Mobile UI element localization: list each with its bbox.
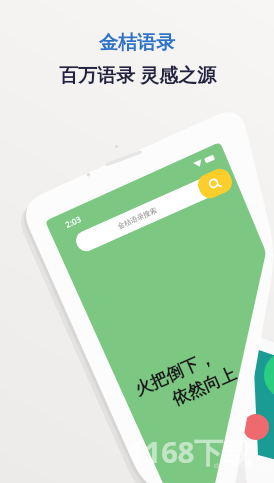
staticText: 金桔语录搜索 xyxy=(116,205,158,231)
staticText: 百万语录 灵感之源 xyxy=(59,62,216,88)
staticText: down.1168.com xyxy=(214,461,267,471)
staticText: 1168下载 xyxy=(128,432,253,472)
staticText: 火把倒下， xyxy=(131,347,218,400)
button[interactable]: Search xyxy=(194,165,236,202)
staticText: 金桔语录 xyxy=(99,31,175,55)
staticText: 2:03 xyxy=(63,213,83,230)
button[interactable]: 金桔语录搜索 xyxy=(73,170,227,255)
staticText: 依然向上 xyxy=(169,363,239,410)
